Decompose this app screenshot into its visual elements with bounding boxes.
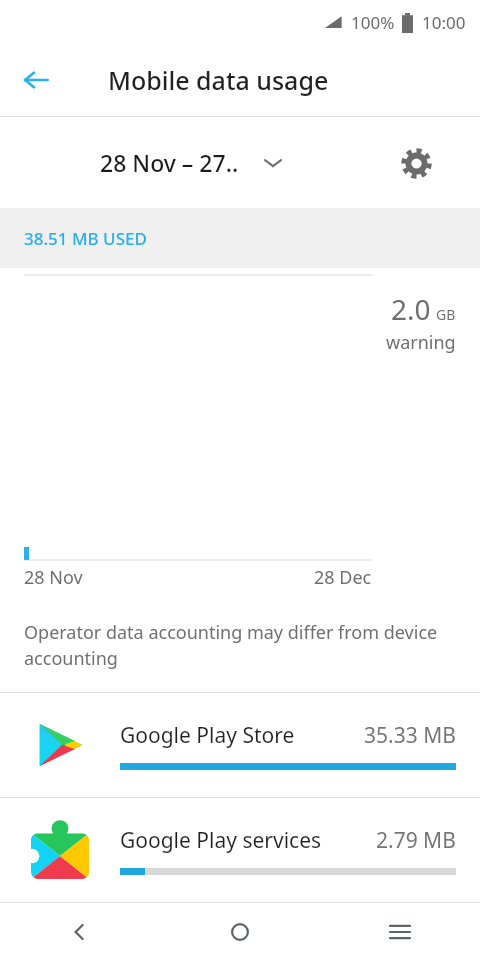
staticText: 28 Nov – 27.. xyxy=(100,147,239,178)
staticText: Google Play services xyxy=(120,826,322,855)
staticText: 10:00 xyxy=(422,11,466,34)
staticText: GB xyxy=(436,305,456,324)
staticText: Operator data accounting may differ from… xyxy=(24,620,438,670)
staticText: 35.33 MB xyxy=(364,721,456,750)
staticText: 2.79 MB xyxy=(376,826,456,855)
staticText: warning xyxy=(386,330,456,355)
button[interactable]: 28 Nov – 27.. xyxy=(100,147,283,178)
button[interactable]: Google Play services xyxy=(0,798,480,902)
staticText: 100% xyxy=(351,11,395,34)
staticText: 2.0 xyxy=(391,290,431,328)
staticText: 38.51 MB USED xyxy=(24,227,147,250)
button[interactable]: Google Play Store xyxy=(0,693,480,797)
staticText: 28 Dec xyxy=(314,565,372,590)
button[interactable]: Settings xyxy=(394,141,438,185)
button[interactable]: Recent apps xyxy=(320,903,480,960)
button[interactable]: Home xyxy=(160,903,320,960)
button[interactable]: Back xyxy=(0,903,160,960)
staticText: 28 Nov xyxy=(24,565,83,590)
staticText: Google Play Store xyxy=(120,721,295,750)
staticText: Mobile data usage xyxy=(108,63,329,97)
button[interactable]: Back xyxy=(12,56,60,104)
